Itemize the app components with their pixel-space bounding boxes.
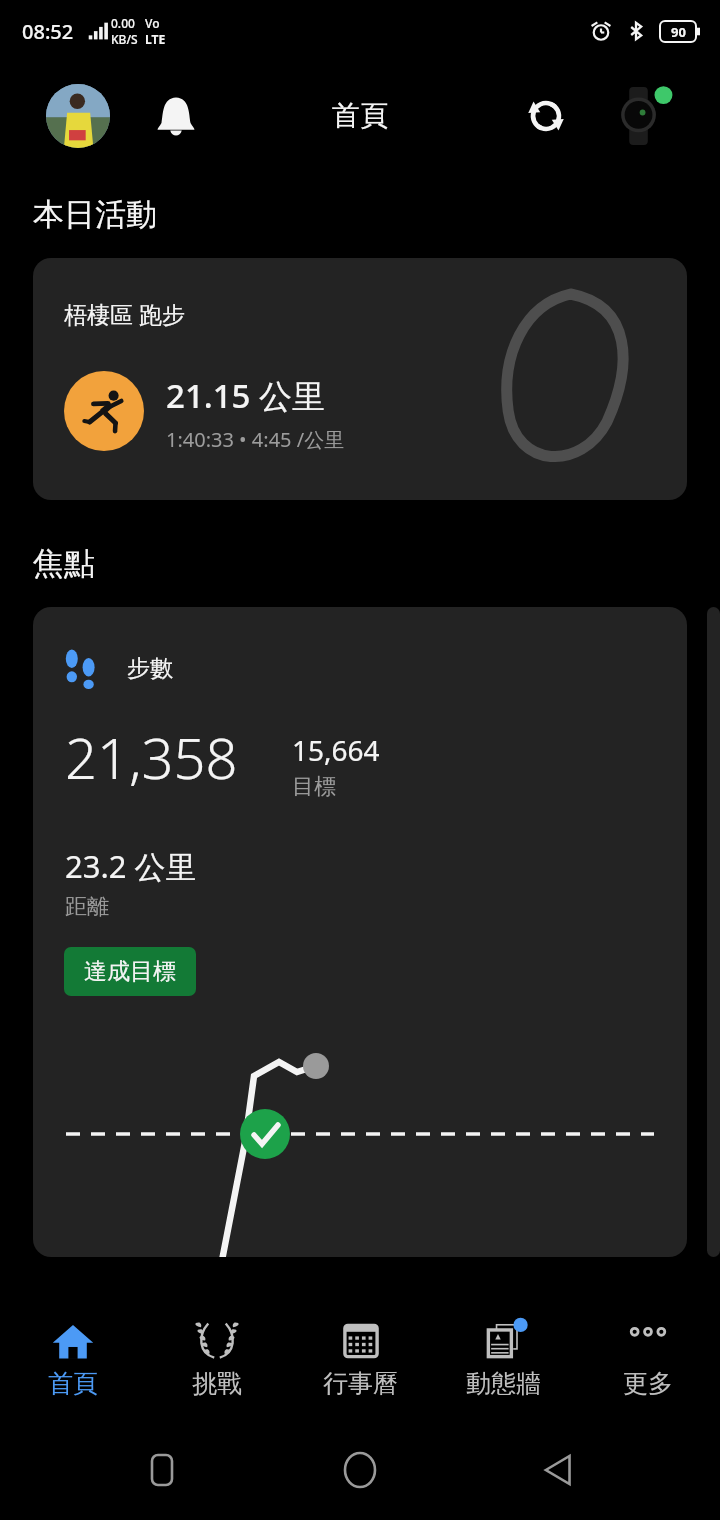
button[interactable]: Notifications (140, 80, 212, 152)
staticText: 90 (671, 23, 686, 41)
staticText: 步數 (127, 654, 173, 683)
button[interactable]: Home (324, 1434, 396, 1506)
staticText: 1:40:33 • 4:45 /公里 (166, 426, 345, 453)
staticText: 挑戰 (192, 1368, 242, 1399)
staticText: 焦點 (33, 544, 95, 583)
staticText: 行事曆 (323, 1368, 398, 1399)
button[interactable]: 梧棲區 跑步 (33, 258, 687, 500)
staticText: 首頁 (332, 98, 388, 133)
staticText: 目標 (292, 773, 336, 801)
button[interactable]: 動態牆 (432, 1296, 575, 1420)
button[interactable]: Back (522, 1434, 594, 1506)
staticText: 動態牆 (466, 1368, 541, 1399)
button[interactable]: Device (606, 80, 678, 152)
staticText: 0.00 (111, 15, 135, 31)
staticText: 21,358 (65, 719, 238, 795)
button[interactable]: 首頁 (1, 1296, 144, 1420)
staticText: 首頁 (48, 1368, 98, 1399)
staticText: LTE (145, 31, 166, 47)
staticText: 21.15 公里 (166, 373, 326, 418)
staticText: 23.2 公里 (65, 845, 197, 887)
button[interactable]: 達成目標 (64, 947, 196, 996)
staticText: 本日活動 (33, 195, 157, 234)
staticText: KB/S (111, 31, 138, 47)
button[interactable]: 挑戰 (145, 1296, 288, 1420)
button[interactable]: Profile (46, 84, 110, 148)
button[interactable]: 步數 (33, 607, 687, 1257)
staticText: Vo (145, 15, 160, 31)
staticText: 15,664 (292, 731, 380, 769)
button[interactable]: Recents (126, 1434, 198, 1506)
button[interactable]: 行事曆 (289, 1296, 432, 1420)
staticText: 梧棲區 跑步 (64, 298, 185, 329)
button[interactable]: 更多 (576, 1296, 719, 1420)
staticText: 08:52 (22, 18, 74, 45)
staticText: 更多 (623, 1368, 673, 1399)
button[interactable]: Sync (510, 80, 582, 152)
staticText: 距離 (65, 893, 109, 921)
staticText: 達成目標 (84, 957, 176, 986)
